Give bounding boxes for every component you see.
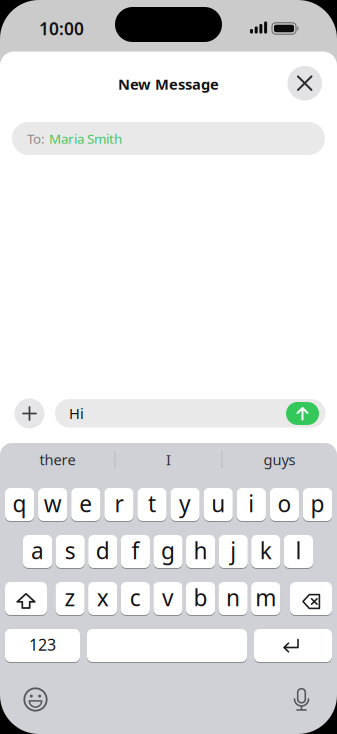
button[interactable]: x [88,581,117,615]
staticText: a [31,535,44,565]
staticText: t [148,488,156,518]
staticText: To: [27,130,45,147]
staticText: b [193,582,207,612]
staticText: there [39,450,75,469]
button[interactable]: d [88,534,117,568]
button[interactable]: Emoji [22,686,48,712]
staticText: New Message [118,74,219,94]
staticText: w [44,488,62,518]
button[interactable]: To: [12,122,325,155]
button[interactable]: z [55,581,85,615]
staticText: I [166,450,171,469]
button[interactable]: I [118,444,218,474]
button[interactable]: b [186,581,215,615]
staticText: p [310,488,324,518]
staticText: n [226,582,240,612]
staticText: guys [263,450,295,469]
staticText: r [114,488,123,518]
staticText: 123 [29,634,56,655]
button[interactable]: Space [87,628,247,662]
staticText: i [248,488,254,518]
button[interactable]: Send [286,402,319,425]
staticText: k [260,535,272,565]
button[interactable]: Add attachment [14,398,44,428]
staticText: q [13,488,27,518]
button[interactable]: f [121,534,150,568]
staticText: Maria Smith [49,130,122,147]
button[interactable]: there [7,444,107,474]
button[interactable]: n [218,581,248,615]
button[interactable]: l [284,534,313,568]
button[interactable]: s [56,534,85,568]
staticText: Hi [69,404,84,423]
staticText: y [179,488,191,518]
staticText: v [162,582,174,612]
staticText: z [65,582,76,612]
staticText: g [161,535,175,565]
button[interactable]: y [170,487,200,521]
staticText: x [97,582,109,612]
button[interactable]: g [153,534,183,568]
staticText: 10:00 [39,17,84,40]
button[interactable]: w [38,487,67,521]
staticText: f [131,535,139,565]
button[interactable]: guys [229,444,329,474]
button[interactable]: r [104,487,133,521]
button[interactable]: u [204,487,233,521]
button[interactable]: t [137,487,167,521]
button[interactable]: m [251,581,280,615]
button[interactable]: Dictation [292,686,310,712]
button[interactable]: q [5,487,34,521]
staticText: e [79,488,92,518]
staticText: l [295,535,301,565]
button[interactable]: o [270,487,299,521]
staticText: o [277,488,291,518]
button[interactable]: a [23,534,52,568]
staticText: j [230,535,236,565]
staticText: m [255,582,276,612]
button[interactable]: j [219,534,248,568]
button[interactable]: Hi [55,399,325,428]
button[interactable]: p [303,487,332,521]
staticText: d [96,535,110,565]
button[interactable]: h [186,534,215,568]
button[interactable]: Close [287,66,322,100]
button[interactable]: Delete [290,581,332,615]
button[interactable]: k [251,534,280,568]
button[interactable]: c [121,581,150,615]
button[interactable]: 123 [5,628,80,662]
button[interactable]: Return [254,628,332,662]
staticText: h [194,535,208,565]
staticText: u [211,488,225,518]
staticText: s [65,535,76,565]
button[interactable]: Shift [5,581,47,615]
button[interactable]: v [153,581,182,615]
staticText: c [130,582,141,612]
button[interactable]: i [237,487,266,521]
button[interactable]: e [71,487,100,521]
